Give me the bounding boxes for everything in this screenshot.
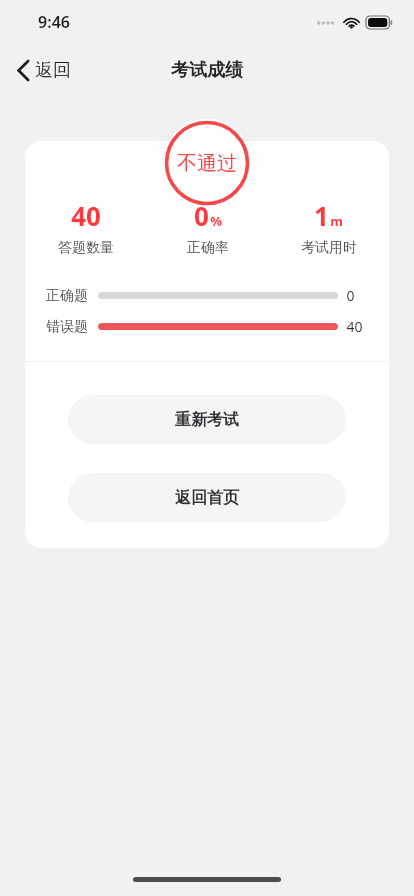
- staticText: 40: [71, 198, 101, 233]
- staticText: 返回: [35, 59, 71, 82]
- staticText: m: [330, 212, 343, 230]
- staticText: 40: [346, 317, 363, 336]
- staticText: 9:46: [38, 11, 70, 33]
- staticText: 正确率: [187, 239, 229, 257]
- staticText: 考试成绩: [171, 59, 243, 82]
- staticText: 不通过: [177, 151, 237, 176]
- staticText: 1: [314, 198, 329, 233]
- staticText: 重新考试: [175, 410, 239, 430]
- staticText: 返回首页: [175, 488, 239, 508]
- staticText: 错误题: [46, 318, 88, 336]
- button[interactable]: 重新考试: [68, 395, 346, 444]
- staticText: 0: [194, 198, 209, 233]
- button[interactable]: 返回首页: [68, 473, 346, 522]
- staticText: 考试用时: [301, 239, 357, 257]
- staticText: %: [210, 212, 222, 230]
- staticText: 正确题: [46, 287, 88, 305]
- staticText: 答题数量: [58, 239, 114, 257]
- staticText: 0: [346, 286, 355, 305]
- button[interactable]: 返回: [10, 53, 79, 88]
